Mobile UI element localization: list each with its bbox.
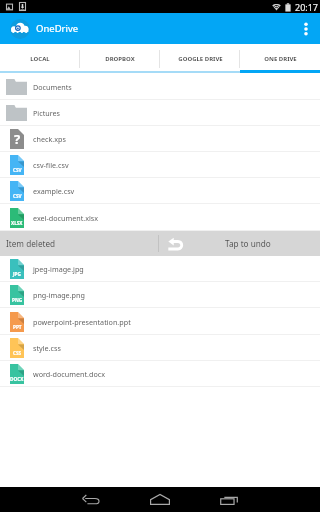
button[interactable]: CSV (0, 178, 320, 204)
staticText: CSV (13, 167, 22, 173)
button[interactable]: PPT (0, 308, 320, 335)
staticText: word-document.docx (33, 369, 105, 379)
button[interactable]: DOCX (0, 361, 320, 387)
button[interactable]: ONE DRIVE (240, 44, 320, 73)
button[interactable]: CSS (0, 335, 320, 361)
staticText: LOCAL (30, 55, 50, 63)
button[interactable]: Pictures (0, 100, 320, 126)
staticText: Pictures (33, 108, 61, 118)
button[interactable]: More options (294, 17, 318, 41)
staticText: Documents (33, 82, 72, 92)
button[interactable]: DROPBOX (80, 44, 160, 73)
staticText: OneDrive (36, 22, 79, 35)
button[interactable]: Tap to undo (159, 231, 320, 256)
button[interactable]: Home (142, 487, 178, 512)
button[interactable]: Recent apps (211, 487, 247, 512)
staticText: example.csv (33, 186, 75, 196)
staticText: Tap to undo (225, 238, 271, 249)
button[interactable]: CSV (0, 152, 320, 178)
button[interactable]: Back (73, 487, 109, 512)
staticText: PPT (13, 324, 22, 330)
staticText: jpeg-image.jpg (33, 264, 84, 274)
staticText: ONE DRIVE (264, 55, 297, 63)
staticText: XLSX (11, 220, 23, 226)
staticText: exel-document.xlsx (33, 213, 99, 223)
staticText: Item deleted (6, 238, 56, 249)
staticText: powerpoint-presentation.ppt (33, 317, 131, 327)
staticText: CSV (13, 193, 22, 199)
staticText: check.xps (33, 134, 66, 144)
staticText: csv-file.csv (33, 160, 69, 170)
staticText: ? (14, 130, 21, 148)
staticText: DOCX (10, 376, 24, 382)
staticText: CSS (13, 350, 22, 356)
button[interactable]: ? (0, 126, 320, 152)
button[interactable]: XLSX (0, 204, 320, 231)
button[interactable]: PNG (0, 282, 320, 308)
staticText: 20:17 (295, 1, 319, 13)
button[interactable]: JPG (0, 256, 320, 282)
staticText: style.css (33, 343, 61, 353)
button[interactable]: Documents (0, 73, 320, 100)
button[interactable]: LOCAL (0, 44, 80, 73)
staticText: JPG (13, 271, 21, 277)
button[interactable]: GOOGLE DRIVE (160, 44, 240, 73)
staticText: DROPBOX (105, 55, 135, 63)
staticText: PNG (12, 297, 23, 303)
staticText: png-image.png (33, 290, 85, 300)
staticText: GOOGLE DRIVE (178, 55, 223, 63)
